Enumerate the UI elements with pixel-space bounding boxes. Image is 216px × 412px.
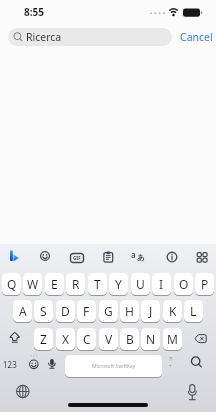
button[interactable]: Z bbox=[34, 328, 53, 350]
staticText: Microsoft SwiftKey bbox=[92, 363, 136, 370]
button[interactable]: W bbox=[23, 273, 42, 295]
staticText: ?! bbox=[169, 356, 173, 363]
staticText: F bbox=[83, 303, 90, 319]
button[interactable]: P bbox=[195, 273, 214, 295]
staticText: S bbox=[40, 303, 47, 319]
button[interactable]: Y bbox=[109, 273, 128, 295]
button[interactable] bbox=[186, 352, 208, 374]
staticText: I bbox=[159, 276, 164, 292]
button[interactable]: O bbox=[174, 273, 193, 295]
staticText: D bbox=[61, 303, 70, 319]
staticText: U bbox=[136, 276, 145, 292]
staticText: あ bbox=[137, 253, 145, 262]
button[interactable]: J bbox=[141, 300, 160, 322]
button[interactable] bbox=[33, 244, 57, 268]
button[interactable]: A bbox=[13, 300, 32, 322]
button[interactable]: R bbox=[66, 273, 85, 295]
staticText: GIF bbox=[73, 255, 81, 261]
button[interactable]: a bbox=[130, 245, 150, 265]
staticText: O bbox=[179, 276, 189, 292]
button[interactable] bbox=[43, 355, 61, 373]
button[interactable]: F bbox=[77, 300, 96, 322]
button[interactable]: C bbox=[77, 328, 96, 350]
staticText: Cancel bbox=[180, 30, 213, 44]
button[interactable]: G bbox=[99, 300, 118, 322]
staticText: K bbox=[169, 303, 177, 319]
staticText: C bbox=[83, 331, 91, 347]
staticText: 8:55 bbox=[24, 5, 44, 19]
button[interactable]: GIF bbox=[64, 245, 90, 271]
staticText: V bbox=[105, 331, 113, 347]
button[interactable]: U bbox=[131, 273, 150, 295]
staticText: X bbox=[62, 331, 70, 347]
button[interactable] bbox=[4, 327, 28, 350]
button[interactable] bbox=[190, 245, 214, 269]
button[interactable]: K bbox=[163, 300, 182, 322]
button[interactable]: V bbox=[99, 328, 118, 350]
button[interactable] bbox=[4, 245, 22, 263]
button[interactable] bbox=[160, 245, 184, 269]
staticText: Y bbox=[115, 276, 122, 292]
staticText: Z bbox=[40, 331, 47, 347]
button[interactable]: T bbox=[88, 273, 107, 295]
staticText: G bbox=[104, 303, 113, 319]
button[interactable]: Cancel bbox=[176, 28, 216, 46]
button[interactable]: M bbox=[163, 328, 182, 350]
button[interactable] bbox=[65, 355, 162, 377]
staticText: M bbox=[167, 331, 178, 347]
staticText: J bbox=[149, 303, 153, 319]
staticText: H bbox=[125, 303, 134, 319]
button[interactable] bbox=[11, 380, 35, 404]
button[interactable]: I bbox=[152, 273, 171, 295]
staticText: T bbox=[94, 276, 101, 292]
staticText: Ricerca bbox=[26, 30, 62, 44]
staticText: N bbox=[146, 331, 156, 347]
staticText: R bbox=[72, 276, 80, 292]
button[interactable]: H bbox=[120, 300, 139, 322]
button[interactable]: S bbox=[34, 300, 53, 322]
staticText: L bbox=[190, 303, 197, 319]
staticText: B bbox=[126, 331, 134, 347]
button[interactable]: X bbox=[56, 328, 75, 350]
button[interactable]: D bbox=[56, 300, 75, 322]
button[interactable]: B bbox=[120, 328, 139, 350]
button[interactable]: L bbox=[184, 300, 203, 322]
button[interactable] bbox=[188, 327, 212, 350]
button[interactable] bbox=[96, 244, 120, 268]
button[interactable]: E bbox=[45, 273, 64, 295]
staticText: P bbox=[201, 276, 209, 292]
staticText: a bbox=[131, 249, 136, 260]
button[interactable]: ?! bbox=[164, 352, 177, 366]
button[interactable]: 123 bbox=[1, 355, 19, 373]
staticText: A bbox=[19, 303, 27, 319]
button[interactable]: Q bbox=[2, 273, 21, 295]
button[interactable] bbox=[8, 28, 172, 46]
button[interactable]: N bbox=[141, 328, 160, 350]
staticText: E bbox=[51, 276, 58, 292]
staticText: Q bbox=[7, 276, 17, 292]
staticText: W bbox=[27, 276, 39, 292]
staticText: 123 bbox=[3, 359, 17, 370]
button[interactable] bbox=[25, 355, 43, 373]
button[interactable] bbox=[181, 381, 204, 405]
